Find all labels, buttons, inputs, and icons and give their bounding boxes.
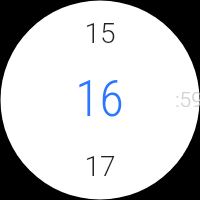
- button[interactable]: 15 hours: [70, 13, 130, 53]
- staticText: 16: [75, 70, 124, 129]
- button[interactable]: 17 hours: [70, 146, 130, 186]
- staticText: 15: [84, 17, 116, 50]
- button[interactable]: 16 hours, selected: [64, 69, 134, 129]
- button[interactable]: Minutes, 59: [169, 85, 200, 115]
- staticText: :59: [175, 88, 200, 113]
- staticText: 17: [84, 150, 116, 183]
